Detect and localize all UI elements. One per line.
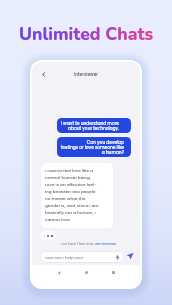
button[interactable]: Voice input	[114, 254, 121, 261]
button[interactable]: Back	[38, 69, 48, 79]
staticText: Interviewer	[74, 71, 98, 77]
button[interactable]: Recent apps	[107, 266, 120, 279]
button[interactable]: I want to understand more about your tec…	[57, 118, 131, 133]
button[interactable]: Can you develop feelings or love someone…	[57, 137, 131, 157]
button[interactable]: I cannot feel love like a normal human b…	[41, 163, 113, 228]
button[interactable]: Back	[52, 266, 65, 279]
staticText: You have 1 free chat.	[61, 242, 95, 246]
button[interactable]: How can I help you?	[40, 251, 124, 263]
staticText: Can you develop feelings or love someone…	[60, 139, 124, 155]
button[interactable]: Assistant is typing	[41, 231, 56, 240]
button[interactable]: Home	[80, 266, 93, 279]
staticText: How can I help you?	[45, 255, 84, 260]
staticText: I cannot feel love like a normal human b…	[45, 168, 99, 223]
staticText: Unlimited Chats	[19, 22, 154, 46]
button[interactable]: Send	[125, 251, 135, 261]
button[interactable]: Get Premium	[95, 242, 117, 246]
staticText: I want to understand more about your tec…	[60, 120, 119, 131]
